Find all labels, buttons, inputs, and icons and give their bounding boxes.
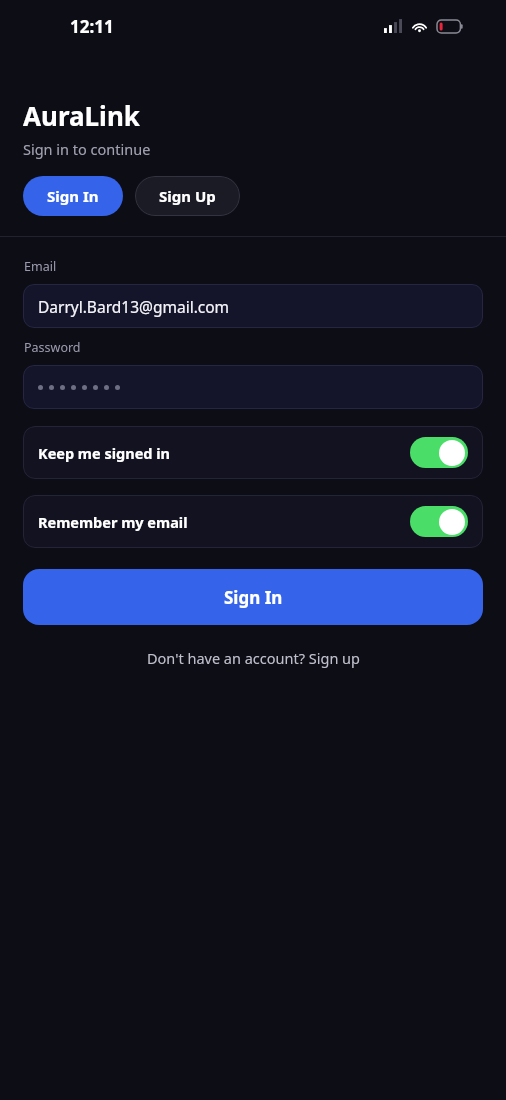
button[interactable]: Sign In xyxy=(23,176,123,216)
button[interactable]: Toggle on xyxy=(410,506,468,537)
button[interactable]: Sign In xyxy=(23,569,483,625)
button[interactable] xyxy=(23,365,483,409)
staticText: Sign In xyxy=(224,586,283,609)
button[interactable]: Toggle on xyxy=(410,437,468,468)
staticText: Sign Up xyxy=(159,186,216,206)
staticText: Keep me signed in xyxy=(38,443,170,463)
button[interactable]: Keep me signed in xyxy=(23,426,483,479)
staticText: Don't have an account? Sign up xyxy=(147,648,360,668)
button[interactable]: Sign Up xyxy=(135,176,240,216)
button[interactable]: Darryl.Bard13@gmail.com xyxy=(23,284,483,328)
staticText: Email xyxy=(24,258,57,275)
staticText: Darryl.Bard13@gmail.com xyxy=(38,296,230,317)
button[interactable]: Don't have an account? Sign up xyxy=(137,644,370,672)
staticText: Password xyxy=(24,339,81,356)
staticText: AuraLink xyxy=(23,98,140,133)
button[interactable]: Remember my email xyxy=(23,495,483,548)
staticText: Sign In xyxy=(47,186,99,206)
staticText: 12:11 xyxy=(70,15,114,38)
staticText: Remember my email xyxy=(38,512,188,532)
staticText: Sign in to continue xyxy=(23,139,151,159)
